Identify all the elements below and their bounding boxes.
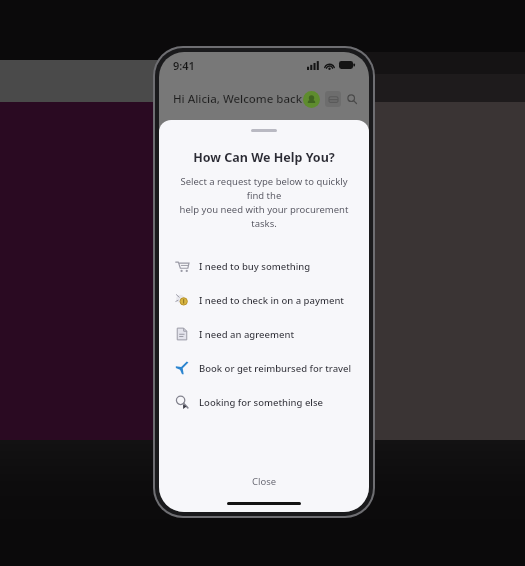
staticText: Book or get reimbursed for travel	[199, 362, 352, 375]
staticText: 9:41	[173, 58, 195, 73]
button[interactable]: I need an agreement	[159, 317, 369, 351]
staticText: I need to check in on a payment	[199, 294, 344, 307]
staticText: Looking for something else	[199, 396, 323, 409]
staticText: Select a request type below to quickly f…	[173, 175, 355, 230]
staticText: I need to buy something	[199, 260, 311, 273]
button[interactable]: Profile	[303, 91, 320, 108]
staticText: I need an agreement	[199, 328, 295, 341]
button[interactable]: Looking for something else	[159, 385, 369, 419]
button[interactable]: Close	[159, 466, 369, 496]
button[interactable]: Book or get reimbursed for travel	[159, 351, 369, 385]
button[interactable]: I need to check in on a payment	[159, 283, 369, 317]
staticText: Close	[252, 475, 277, 488]
button[interactable]: Apps	[325, 91, 341, 107]
button[interactable]: I need to buy something	[159, 249, 369, 283]
button[interactable]: Search	[347, 91, 357, 107]
staticText: Hi Alicia, Welcome back	[173, 91, 303, 107]
staticText: How Can We Help You?	[159, 149, 369, 166]
